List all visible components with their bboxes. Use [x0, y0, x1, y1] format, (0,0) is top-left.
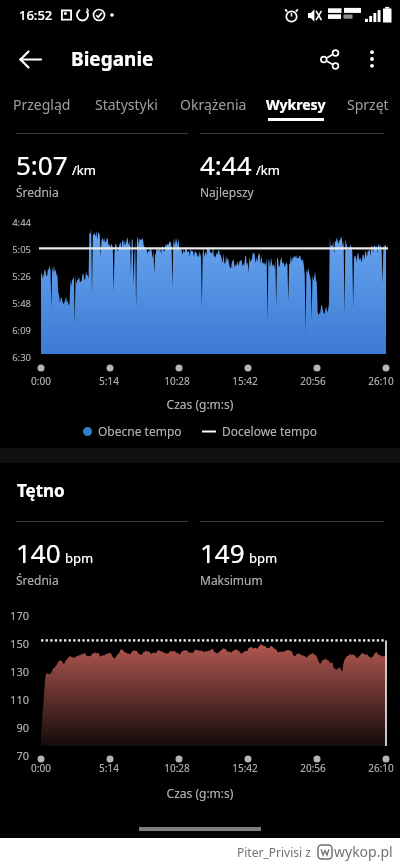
staticText: Średnia — [16, 184, 59, 200]
staticText: 5:14 — [91, 374, 127, 388]
staticText: 15:42 — [227, 761, 263, 775]
staticText: Statystyki — [95, 95, 158, 114]
staticText: Piter_Privisi z — [237, 844, 311, 860]
staticText: 4:44 — [200, 147, 252, 182]
staticText: 10:28 — [159, 374, 195, 388]
staticText: 149 — [200, 535, 245, 570]
staticText: bpm — [65, 549, 94, 567]
staticText: 5:14 — [91, 761, 127, 775]
staticText: 15:42 — [227, 374, 263, 388]
staticText: Docelowe tempo — [222, 423, 317, 439]
staticText: Czas (g:m:s) — [0, 396, 400, 412]
staticText: 0:00 — [23, 374, 59, 388]
staticText: 10:28 — [159, 761, 195, 775]
staticText: Obecne tempo — [98, 423, 182, 439]
staticText: /km — [256, 161, 280, 179]
staticText: /km — [72, 161, 96, 179]
staticText: 140 — [16, 535, 61, 570]
staticText: Czas (g:m:s) — [0, 785, 400, 801]
staticText: 0:00 — [23, 761, 59, 775]
staticText: 6:30 — [0, 351, 31, 364]
button[interactable]: Wykresy — [257, 87, 335, 129]
staticText: 20:56 — [295, 761, 331, 775]
staticText: bpm — [249, 549, 278, 567]
staticText: 70 — [0, 748, 29, 763]
staticText: wykop.pl — [334, 842, 393, 861]
button[interactable]: Przegląd — [0, 87, 83, 129]
staticText: Sprzęt — [347, 95, 389, 114]
staticText: 150 — [0, 636, 29, 651]
staticText: 130 — [0, 664, 29, 679]
staticText: 20:56 — [295, 374, 331, 388]
staticText: Okrążenia — [180, 95, 247, 114]
staticText: 5:07 — [16, 147, 68, 182]
staticText: Tętno — [17, 479, 65, 502]
staticText: 5:05 — [0, 243, 31, 256]
button[interactable]: Share — [306, 36, 352, 82]
button[interactable]: More options — [349, 36, 395, 82]
button[interactable]: Sprzęt — [335, 87, 400, 129]
button[interactable]: Okrążenia — [170, 87, 257, 129]
staticText: Przegląd — [13, 95, 71, 114]
staticText: 90 — [0, 720, 29, 735]
staticText: 26:10 — [363, 761, 399, 775]
staticText: 5:26 — [0, 270, 31, 283]
staticText: 5:48 — [0, 297, 31, 310]
staticText: Najlepszy — [200, 184, 254, 200]
staticText: 170 — [0, 608, 29, 623]
staticText: 110 — [0, 692, 29, 707]
staticText: 6:09 — [0, 324, 31, 337]
staticText: Bieganie — [71, 46, 154, 72]
staticText: 16:52 — [19, 6, 53, 24]
staticText: Wykresy — [266, 95, 326, 114]
staticText: Średnia — [16, 572, 59, 588]
button[interactable]: Back — [7, 36, 53, 82]
staticText: Maksimum — [200, 572, 263, 588]
staticText: 4:44 — [0, 216, 31, 229]
staticText: 26:10 — [363, 374, 399, 388]
button[interactable]: Statystyki — [83, 87, 170, 129]
